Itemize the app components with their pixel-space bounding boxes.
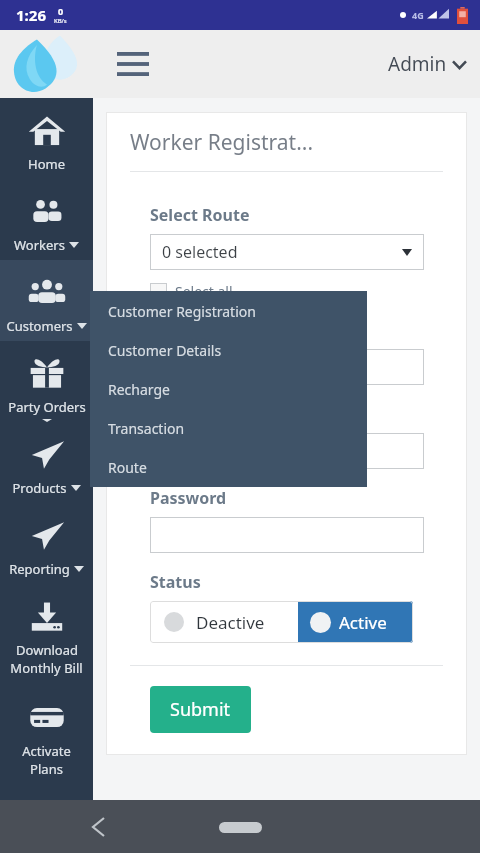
button[interactable]: Deactive	[150, 601, 298, 643]
staticText: Plans	[30, 760, 63, 778]
staticText: Customer Details	[108, 341, 222, 360]
staticText: Submit	[170, 697, 231, 722]
button[interactable]: Submit	[150, 686, 251, 733]
staticText: 0	[58, 5, 64, 17]
staticText: Home	[28, 155, 65, 173]
staticText: Party Orders	[8, 398, 86, 416]
staticText: Recharge	[108, 380, 170, 399]
staticText: Products	[12, 479, 67, 497]
button[interactable]: Customer Registration	[90, 291, 367, 331]
button[interactable]: Back	[78, 807, 118, 847]
button[interactable]: Route	[90, 448, 367, 487]
button[interactable]: Select all	[150, 282, 233, 301]
button[interactable]: Admin	[374, 41, 480, 87]
staticText: Activate	[22, 742, 71, 760]
staticText: Admin	[388, 51, 447, 77]
staticText: Monthly Bill	[10, 659, 83, 677]
staticText: Mobile	[150, 403, 205, 425]
button[interactable]: Activate	[0, 685, 93, 786]
button[interactable]: Workers	[0, 179, 93, 260]
button[interactable]: Home	[216, 814, 264, 840]
staticText: Status	[150, 571, 201, 593]
button[interactable]: Products	[0, 422, 93, 503]
staticText: 4G	[412, 9, 424, 21]
staticText: Select all	[175, 282, 233, 301]
staticText: 1:26	[16, 5, 46, 25]
staticText: Active	[339, 611, 387, 634]
button[interactable]: Party Orders	[0, 341, 93, 422]
button[interactable]: Transaction	[90, 409, 367, 448]
staticText: Reporting	[9, 560, 70, 578]
staticText: KB/s	[54, 17, 67, 25]
button[interactable]: Customer Details	[90, 331, 367, 370]
staticText: Workers	[14, 236, 65, 254]
button[interactable]: Reporting	[0, 503, 93, 584]
staticText: Customer Registration	[108, 302, 256, 321]
staticText: 0 selected	[162, 241, 238, 263]
staticText: Select Route	[150, 204, 250, 226]
button[interactable]: Download	[0, 584, 93, 685]
button[interactable]	[150, 349, 424, 385]
staticText: Deactive	[196, 611, 265, 634]
button[interactable]: Recharge	[90, 370, 367, 409]
button[interactable]	[150, 433, 424, 469]
staticText: Transaction	[108, 419, 185, 438]
button[interactable]	[150, 517, 424, 553]
staticText: Worker Registrat...	[130, 128, 314, 157]
staticText: Password	[150, 487, 227, 509]
button[interactable]: Home	[0, 98, 93, 179]
staticText: Route	[108, 458, 147, 477]
staticText: Name	[150, 319, 198, 341]
staticText: Download	[16, 641, 78, 659]
button[interactable]: Open navigation menu	[111, 42, 155, 86]
button[interactable]: 0 selected	[150, 234, 424, 270]
staticText: Customers	[6, 317, 73, 335]
button[interactable]: Active	[298, 601, 413, 643]
button[interactable]: Customers	[0, 260, 93, 341]
